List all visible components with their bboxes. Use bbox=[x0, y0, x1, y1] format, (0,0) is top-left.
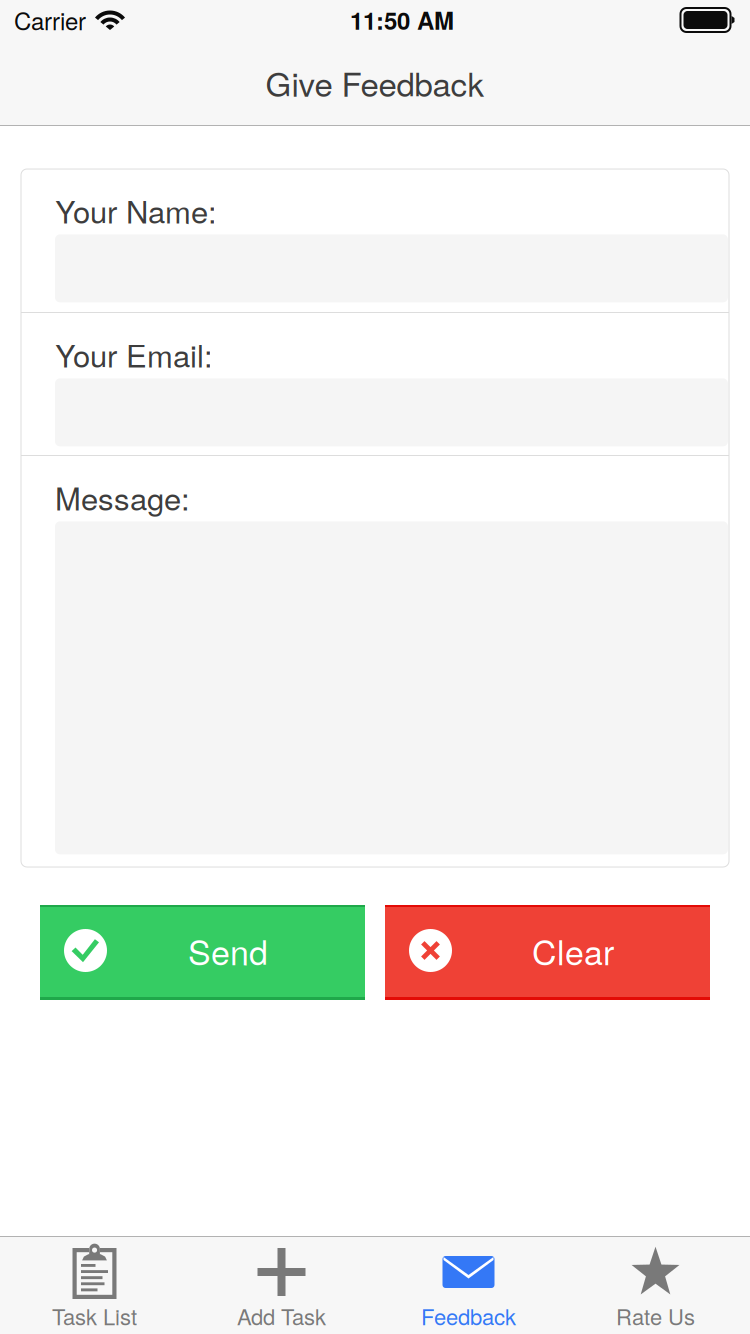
staticText: Your Email: bbox=[55, 332, 213, 376]
staticText: Message: bbox=[55, 475, 190, 519]
button[interactable]: Add Task bbox=[188, 1237, 375, 1334]
staticText: Rate Us bbox=[616, 1300, 695, 1331]
staticText: Task List bbox=[52, 1300, 137, 1331]
staticText: Give Feedback bbox=[265, 59, 484, 106]
button[interactable]: Rate Us bbox=[562, 1237, 749, 1334]
staticText: Send bbox=[188, 926, 268, 975]
staticText: 11:50 AM bbox=[350, 3, 454, 37]
staticText: Clear bbox=[532, 926, 614, 975]
button[interactable]: Send bbox=[40, 905, 365, 1000]
staticText: Carrier bbox=[14, 3, 86, 37]
button[interactable]: Clear bbox=[385, 905, 710, 1000]
staticText: Add Task bbox=[237, 1300, 326, 1331]
button[interactable]: Feedback bbox=[375, 1237, 562, 1334]
button[interactable]: Task List bbox=[1, 1237, 188, 1334]
staticText: Feedback bbox=[421, 1300, 516, 1331]
staticText: Your Name: bbox=[55, 188, 217, 232]
